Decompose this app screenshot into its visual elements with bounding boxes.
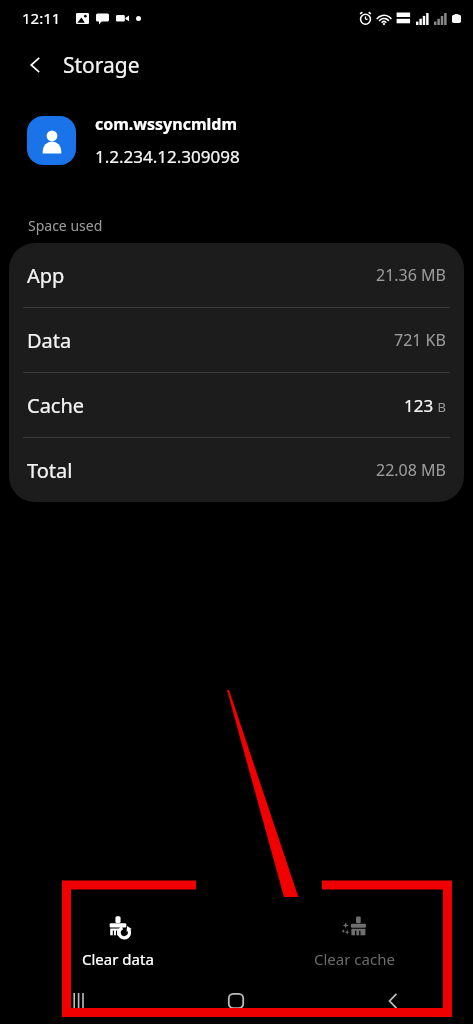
button[interactable]: Cache <box>9 373 464 437</box>
button[interactable]: App <box>9 243 464 307</box>
button[interactable]: Data <box>9 308 464 372</box>
staticText: com.wssyncmldm <box>95 113 237 135</box>
button[interactable]: Home <box>157 977 315 1024</box>
staticText: B <box>434 398 446 416</box>
staticText: App <box>27 262 65 289</box>
staticText: 721 KB <box>394 329 446 351</box>
staticText: Data <box>27 327 72 354</box>
staticText: 1.2.234.12.309098 <box>95 145 240 168</box>
staticText: 12:11 <box>22 8 61 28</box>
staticText: Storage <box>63 51 140 80</box>
staticText: 123 <box>404 394 434 417</box>
staticText: 21.36 MB <box>376 264 446 286</box>
staticText: Clear cache <box>314 949 395 969</box>
button[interactable]: Clear cache <box>236 897 473 977</box>
button[interactable]: Back <box>16 45 56 85</box>
button[interactable]: Total <box>9 438 464 502</box>
button[interactable]: Recents <box>0 977 157 1024</box>
staticText: Clear data <box>82 949 154 969</box>
staticText: Total <box>27 457 73 484</box>
button[interactable]: Clear data <box>0 897 236 977</box>
staticText: Space used <box>28 216 103 235</box>
staticText: 22.08 MB <box>376 459 446 481</box>
staticText: Cache <box>27 392 85 419</box>
button[interactable]: Back <box>315 977 473 1024</box>
